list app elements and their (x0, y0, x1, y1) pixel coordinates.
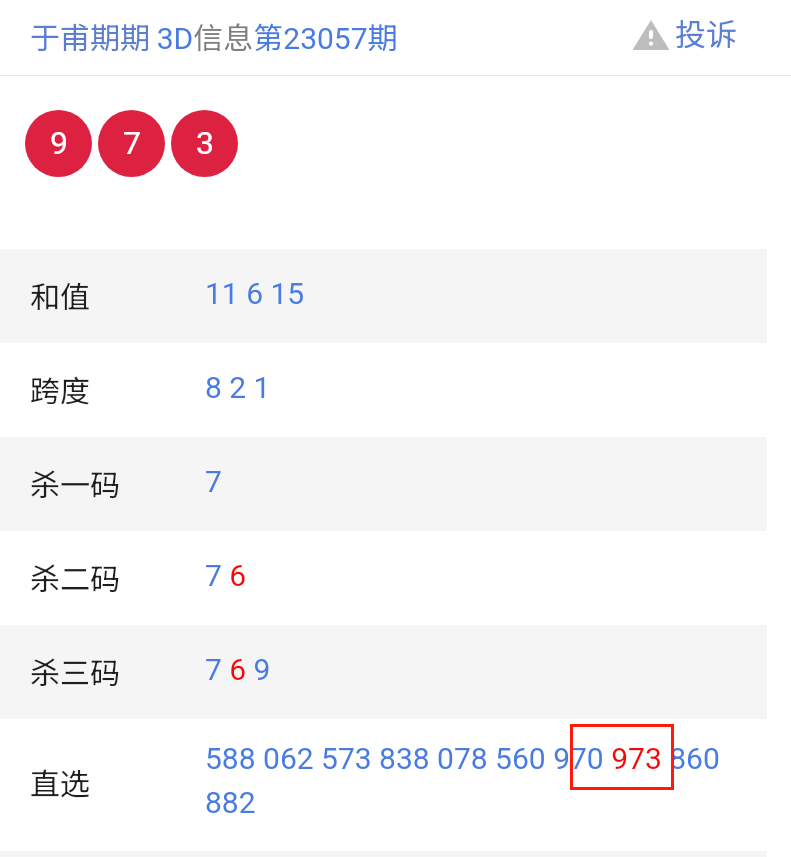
button[interactable]: 杀一码 (0, 437, 791, 531)
staticText: 3 (196, 124, 214, 162)
staticText: 杀二码 (30, 555, 120, 598)
staticText: 和值 (30, 273, 90, 316)
button[interactable]: 和值 (0, 249, 791, 343)
staticText: 直选 (30, 760, 90, 803)
button[interactable]: 杀二码 (0, 531, 791, 625)
staticText: 跨度 (30, 367, 90, 410)
staticText: 于甫期期 3D信息第23057期 (30, 14, 398, 57)
button[interactable]: 于甫期期 3D信息第23057期 (24, 8, 406, 66)
staticText: 11 6 15 (205, 276, 305, 311)
button[interactable]: 3 (171, 110, 238, 177)
staticText: 588 062 573 838 078 560 970 973 860 882 (205, 741, 720, 820)
other: 投诉 (633, 20, 669, 50)
staticText: 7 6 (205, 558, 247, 593)
button[interactable]: 直选 (0, 719, 791, 851)
button[interactable]: 杀三码 (0, 625, 791, 719)
button[interactable]: 投诉 (627, 12, 745, 58)
button[interactable]: 9 (25, 110, 92, 177)
staticText: 7 (205, 464, 222, 499)
staticText: 杀一码 (30, 461, 120, 504)
staticText: 7 (123, 124, 141, 162)
staticText: 8 2 1 (205, 370, 271, 405)
staticText: 7 6 9 (205, 652, 271, 687)
staticText: 投诉 (675, 10, 737, 55)
staticText: 杀三码 (30, 649, 120, 692)
button[interactable]: 跨度 (0, 343, 791, 437)
button[interactable]: 7 (98, 110, 165, 177)
staticText: 9 (50, 124, 68, 162)
